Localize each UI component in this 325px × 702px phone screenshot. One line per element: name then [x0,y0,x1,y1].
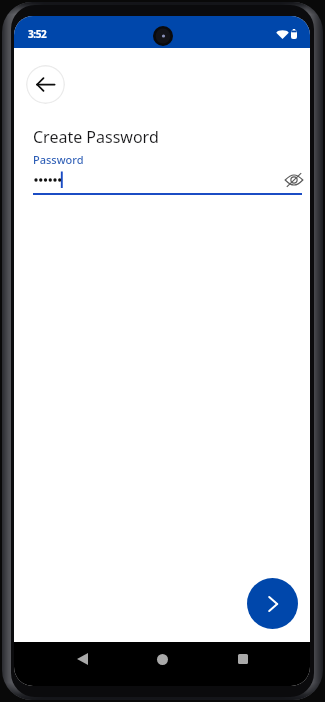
button[interactable]: Home [150,647,174,671]
button[interactable]: Recent apps [231,647,255,671]
staticText: Create Password [33,126,159,148]
staticText: 3:52 [28,27,47,41]
button[interactable]: Back [26,65,65,104]
button[interactable]: Next [247,578,298,629]
button[interactable]: Show password [281,169,307,191]
button[interactable]: Back [70,647,94,671]
staticText: Password [33,152,84,167]
